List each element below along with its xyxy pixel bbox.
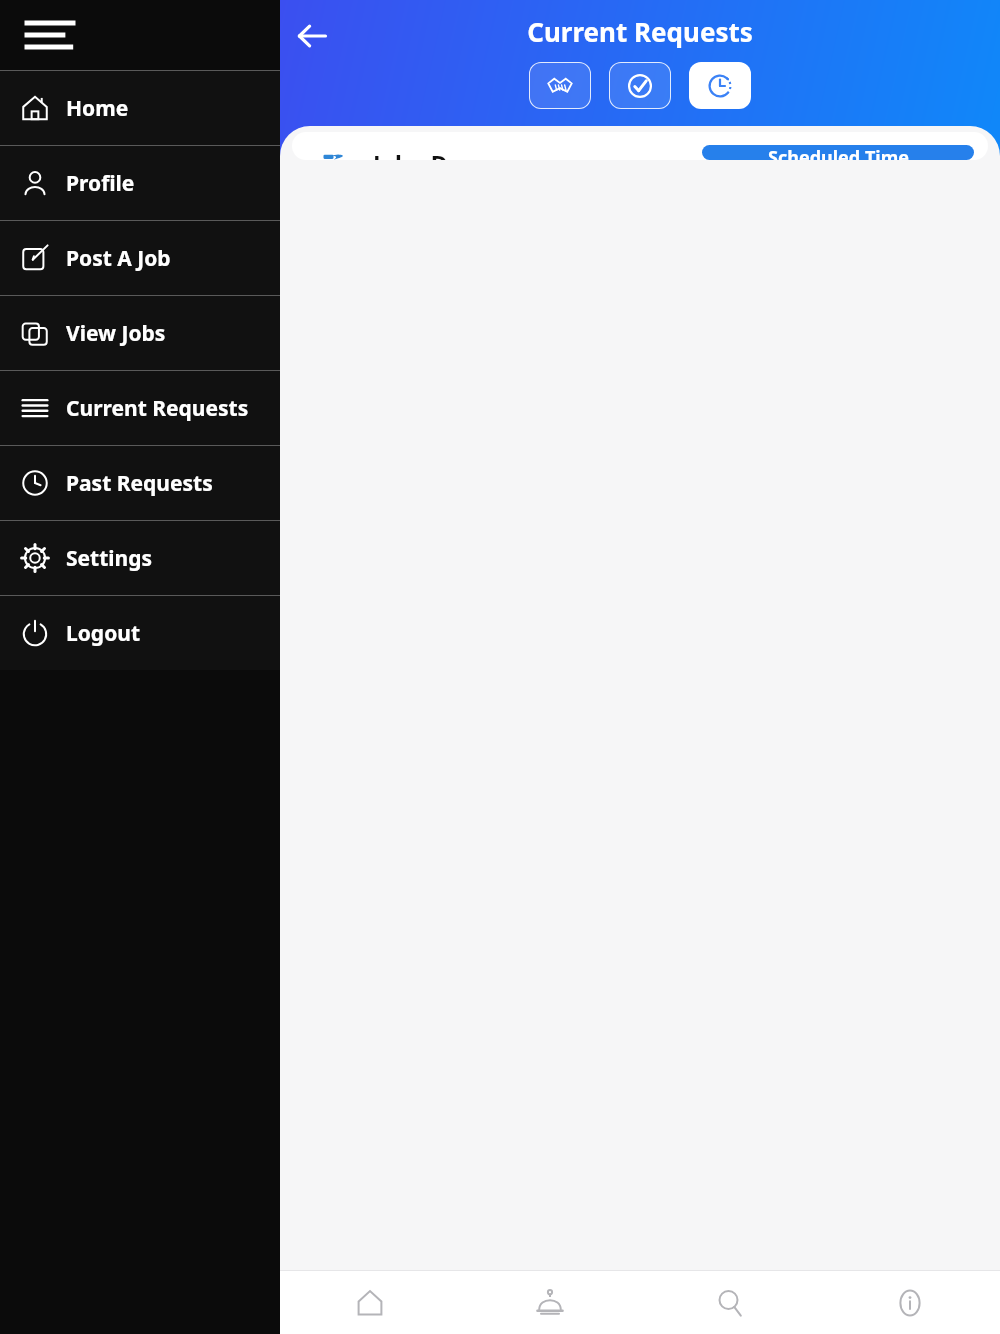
button[interactable]: View Jobs	[0, 296, 280, 370]
button[interactable]: Home	[280, 1271, 460, 1334]
staticText: John Deo	[373, 148, 476, 160]
button[interactable]: Requests	[529, 62, 591, 109]
staticText: Current Requests	[66, 394, 249, 423]
staticText: Post A Job	[66, 244, 171, 273]
staticText: Home	[66, 94, 129, 123]
button[interactable]: Scheduled	[689, 62, 751, 109]
button[interactable]: Accepted	[609, 62, 671, 109]
staticText: Settings	[66, 544, 153, 573]
button[interactable]: Post A Job	[0, 221, 280, 295]
button[interactable]: Past Requests	[0, 446, 280, 520]
button[interactable]: Search	[640, 1271, 820, 1334]
button[interactable]: Current Requests	[0, 371, 280, 445]
button[interactable]: Back	[284, 8, 340, 64]
staticText: Current Requests	[280, 14, 1000, 49]
button[interactable]: Settings	[0, 521, 280, 595]
button[interactable]: Home	[0, 71, 280, 145]
button[interactable]: Services	[460, 1271, 640, 1334]
button[interactable]: Scheduled Time	[702, 145, 974, 160]
staticText: Past Requests	[66, 469, 213, 498]
button[interactable]: Profile	[0, 146, 280, 220]
staticText: Scheduled Time	[768, 145, 909, 160]
button[interactable]: DERNAFIES	[292, 132, 988, 160]
button[interactable]: Info	[820, 1271, 1000, 1334]
button[interactable]: Menu	[0, 0, 280, 70]
button[interactable]: Logout	[0, 596, 280, 670]
staticText: View Jobs	[66, 319, 166, 348]
staticText: Logout	[66, 619, 141, 648]
staticText: Profile	[66, 169, 135, 198]
